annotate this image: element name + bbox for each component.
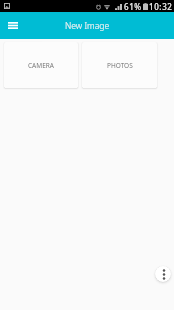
button[interactable]: PHOTOS: [82, 42, 157, 88]
button[interactable]: CAMERA: [4, 42, 78, 88]
staticText: New Image: [65, 20, 110, 32]
button[interactable]: More options: [155, 266, 171, 282]
staticText: CAMERA: [28, 61, 54, 70]
staticText: 61%: [124, 1, 142, 12]
staticText: PHOTOS: [107, 61, 133, 70]
button[interactable]: Open navigation menu: [0, 13, 26, 39]
staticText: 10:32: [149, 1, 173, 12]
